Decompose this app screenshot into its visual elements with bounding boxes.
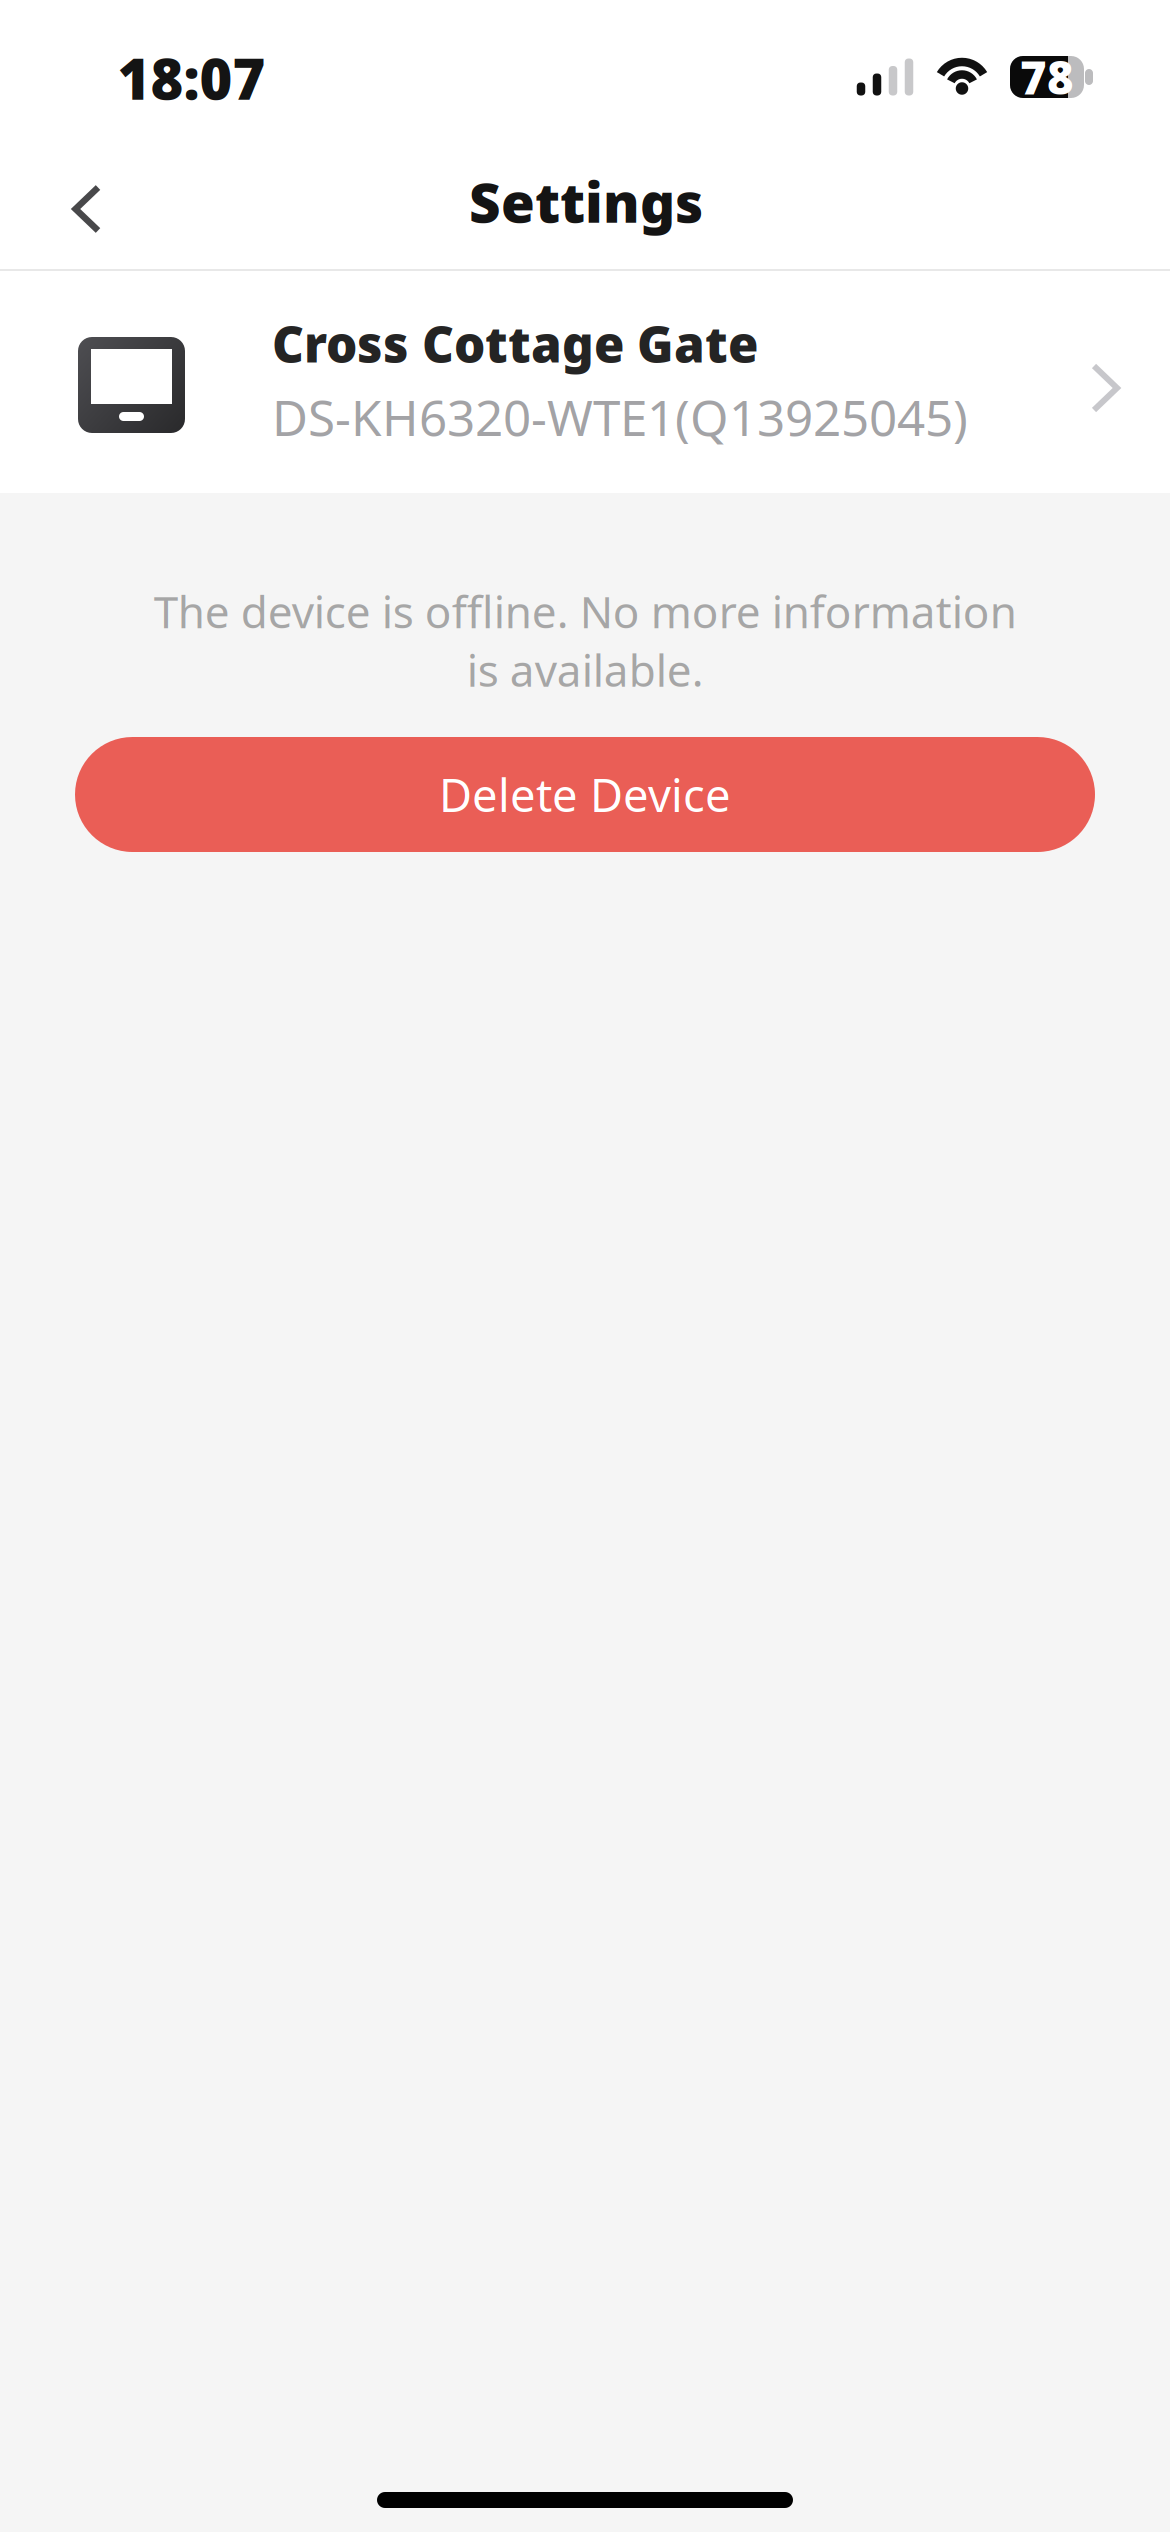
staticText: 18:07 [117,41,265,115]
button[interactable] [66,183,110,235]
staticText: 78 [1020,47,1074,107]
staticText: Delete Device [439,764,731,825]
staticText: Settings [469,165,703,238]
button[interactable]: Cross Cottage Gate [0,271,1170,493]
button[interactable]: Delete Device [75,737,1095,852]
staticText: The device is offline. No more informati… [153,582,1016,699]
staticText: DS-KH6320-WTE1(Q13925045) [272,384,968,449]
staticText: Cross Cottage Gate [272,310,758,376]
